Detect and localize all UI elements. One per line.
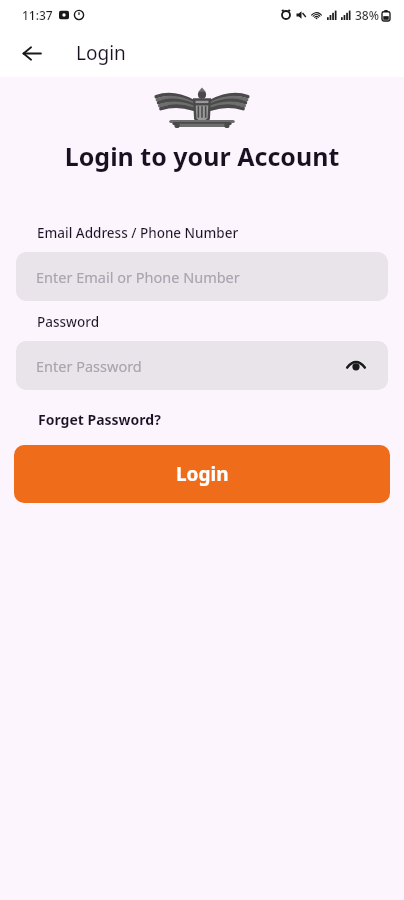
staticText: 38% (355, 7, 379, 23)
button[interactable]: Login (14, 445, 390, 503)
button[interactable]: Show password (343, 353, 369, 379)
button[interactable]: Back (16, 38, 46, 68)
staticText: Enter Password (36, 356, 142, 376)
staticText: Enter Email or Phone Number (36, 267, 240, 287)
button[interactable]: Enter Email or Phone Number (16, 252, 388, 301)
staticText: Login (176, 461, 229, 487)
button[interactable]: Enter Password (16, 341, 388, 390)
button[interactable]: Forget Password? (38, 410, 161, 429)
staticText: Login (76, 40, 126, 66)
staticText: Login to your Account (0, 139, 404, 173)
staticText: 11:37 (22, 7, 53, 23)
staticText: Forget Password? (38, 410, 161, 429)
staticText: Password (37, 313, 100, 331)
staticText: Email Address / Phone Number (37, 224, 239, 242)
